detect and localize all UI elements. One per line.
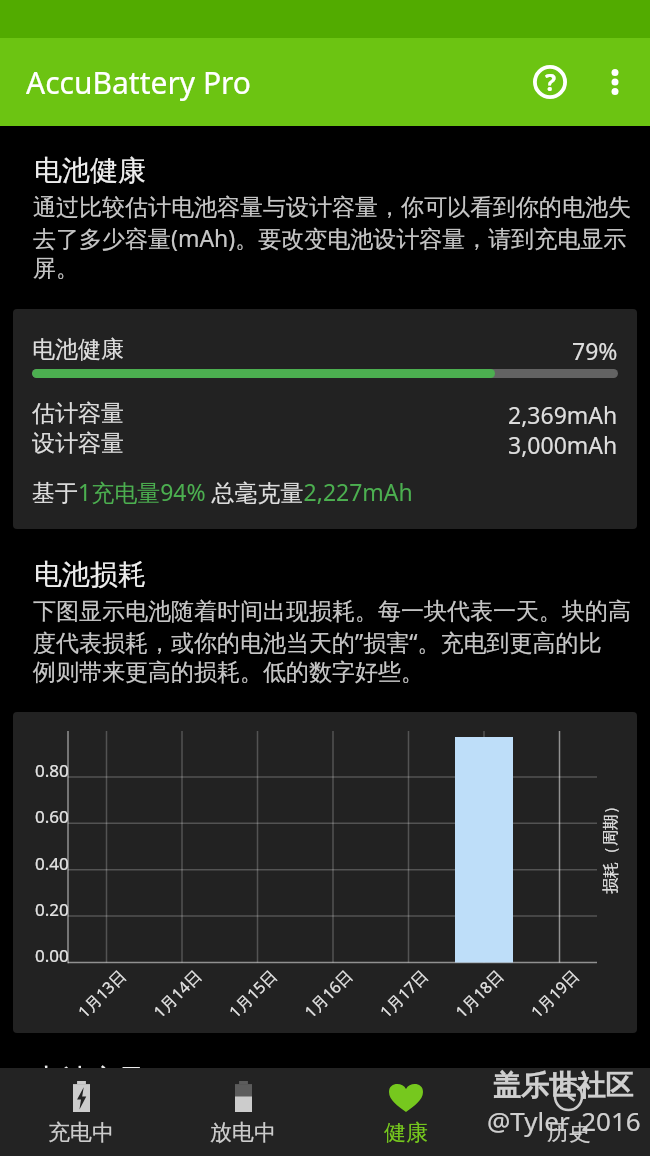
staticText: 估计容量: [32, 399, 508, 428]
staticText: 健康: [384, 1119, 428, 1147]
staticText: 电池健康: [32, 335, 572, 364]
staticText: 基于1充电量94% 总毫克量2,227mAh: [32, 476, 413, 507]
staticText: @Tyler_2016: [487, 1103, 641, 1138]
button[interactable]: More options: [588, 55, 642, 109]
staticText: 2,369mAh: [508, 399, 618, 430]
staticText: 历史: [547, 1119, 591, 1147]
staticText: 充电中: [48, 1119, 114, 1147]
button[interactable]: 历史: [487, 1068, 650, 1156]
staticText: 通过比较估计电池容量与设计容量，你可以看到你的电池失 去了多少容量(mAh)。要…: [33, 193, 650, 283]
button[interactable]: Help: [512, 44, 588, 120]
button[interactable]: 电池健康: [13, 309, 637, 529]
button[interactable]: 充电中: [0, 1068, 162, 1156]
staticText: 下图显示电池随着时间出现损耗。每一块代表一天。块的高 度代表损耗，或你的电池当天…: [33, 597, 650, 687]
staticText: AccuBattery Pro: [26, 62, 512, 103]
staticText: 盖乐世社区: [493, 1068, 633, 1103]
staticText: 电池容量: [34, 1062, 146, 1097]
staticText: 79%: [572, 335, 618, 366]
staticText: 设计容量: [32, 429, 508, 458]
staticText: 3,000mAh: [508, 429, 618, 460]
staticText: ?: [545, 66, 556, 97]
button[interactable]: 健康: [324, 1068, 487, 1156]
staticText: 电池健康: [34, 153, 146, 188]
staticText: 电池损耗: [34, 557, 146, 592]
staticText: 放电中: [210, 1119, 276, 1147]
button[interactable]: 放电中: [162, 1068, 324, 1156]
